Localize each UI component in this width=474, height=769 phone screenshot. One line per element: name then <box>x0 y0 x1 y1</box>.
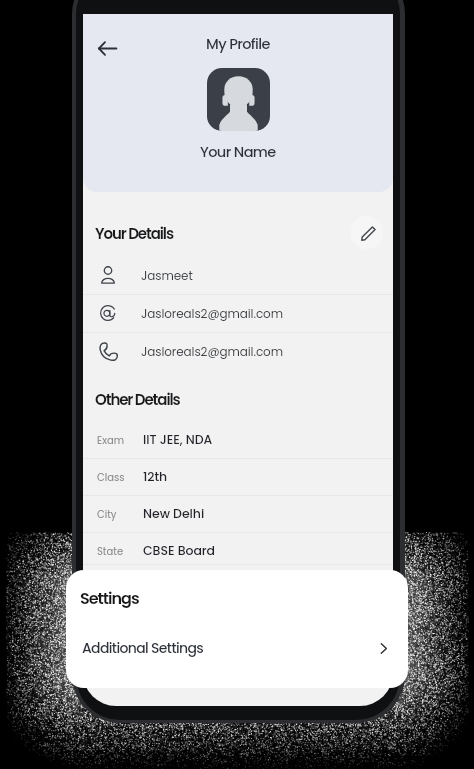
button[interactable]: Additional Settings <box>66 623 408 673</box>
staticText: Jasloreals2@gmail.com <box>141 343 283 360</box>
staticText: Settings <box>80 587 139 609</box>
button[interactable]: Class <box>83 458 393 495</box>
staticText: Your Name <box>200 142 276 162</box>
button[interactable]: Jasmeet <box>83 256 393 294</box>
staticText: Additional Settings <box>82 638 204 658</box>
staticText: Class <box>97 470 125 484</box>
button[interactable]: City <box>83 495 393 532</box>
button[interactable]: State <box>83 532 393 569</box>
button[interactable]: Exam <box>83 421 393 458</box>
staticText: Jasmeet <box>141 267 193 284</box>
staticText: Your Details <box>95 223 173 244</box>
button[interactable]: Jasloreals2@gmail.com <box>83 332 393 370</box>
staticText: City <box>97 507 117 521</box>
staticText: CBSE Board <box>143 542 215 559</box>
staticText: Exam <box>97 433 124 447</box>
button[interactable]: Jasloreals2@gmail.com <box>83 294 393 332</box>
staticText: My Profile <box>206 34 270 54</box>
button[interactable]: Back <box>86 27 129 70</box>
staticText: Other Details <box>95 389 180 410</box>
button[interactable]: Edit profile <box>350 216 383 249</box>
staticText: Jasloreals2@gmail.com <box>141 305 283 322</box>
staticText: 12th <box>143 468 168 485</box>
staticText: New Delhi <box>143 505 205 522</box>
staticText: State <box>97 544 124 558</box>
staticText: IIT JEE, NDA <box>143 431 213 448</box>
